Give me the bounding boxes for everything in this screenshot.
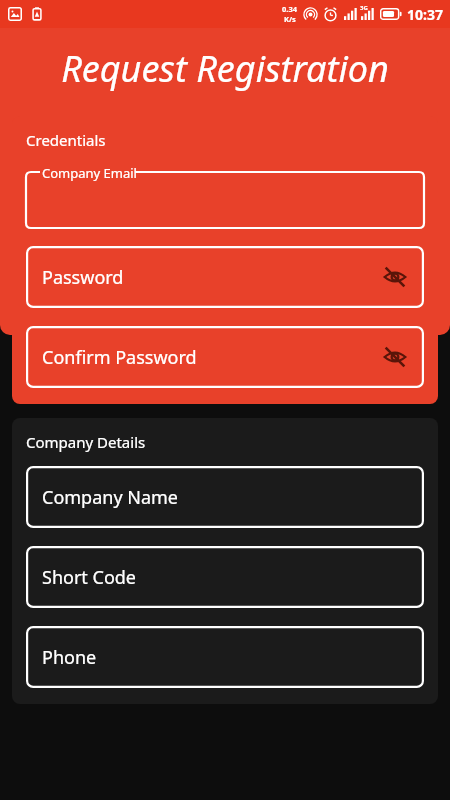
button[interactable]: Short Code (26, 546, 424, 608)
staticText: Credentials (26, 130, 106, 150)
staticText: Company Details (26, 432, 146, 452)
staticText: Phone (42, 645, 97, 670)
button[interactable]: Show password (378, 260, 412, 294)
staticText: Password (42, 265, 124, 290)
staticText: Company Email (42, 164, 137, 182)
button[interactable]: Confirm Password (26, 326, 424, 388)
button[interactable]: Company Name (26, 466, 424, 528)
button[interactable]: Company Email (26, 162, 424, 228)
button[interactable]: Phone (26, 626, 424, 688)
staticText: K/s (284, 14, 296, 24)
staticText: Company Name (42, 485, 179, 510)
button[interactable]: Password (26, 246, 424, 308)
staticText: Short Code (42, 565, 136, 590)
staticText: 3G (360, 4, 368, 12)
staticText: Request Registration (61, 44, 389, 93)
staticText: Confirm Password (42, 345, 197, 370)
staticText: 10:37 (407, 5, 443, 24)
button[interactable]: Show password (378, 340, 412, 374)
staticText: 0.34 (282, 4, 297, 14)
